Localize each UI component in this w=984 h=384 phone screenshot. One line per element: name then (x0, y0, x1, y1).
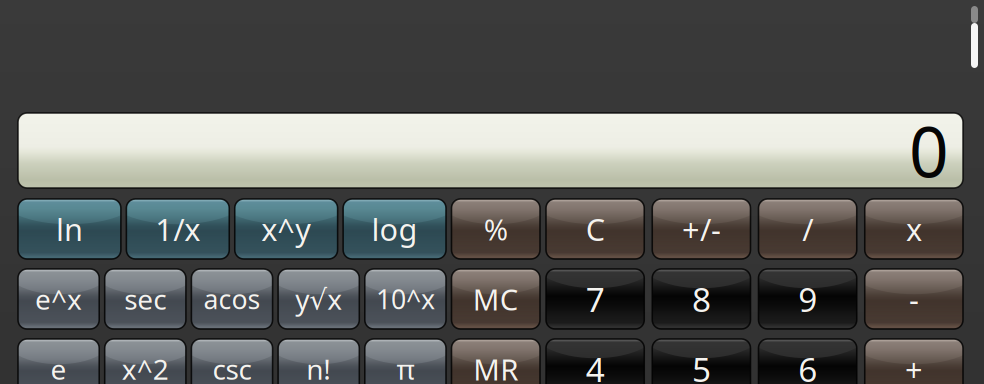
staticText: e^x (35, 280, 82, 318)
staticText: MC (473, 279, 519, 318)
staticText: 8 (692, 277, 711, 321)
staticText: n! (306, 350, 331, 384)
staticText: 1/x (155, 209, 200, 249)
button[interactable]: x^2 (105, 339, 186, 384)
staticText: + (905, 349, 923, 384)
staticText: +/- (682, 209, 721, 249)
button[interactable]: - (865, 269, 963, 329)
staticText: y√x (295, 280, 342, 318)
staticText: x (906, 209, 922, 249)
button[interactable]: n! (278, 339, 359, 384)
button[interactable]: π (365, 339, 446, 384)
staticText: csc (212, 350, 251, 384)
button[interactable]: % (451, 199, 540, 259)
button[interactable]: MC (451, 269, 540, 329)
staticText: 6 (798, 347, 817, 384)
button[interactable]: log (343, 199, 446, 259)
staticText: 10^x (376, 281, 435, 317)
button[interactable]: 1/x (126, 199, 229, 259)
staticText: 0 (909, 104, 949, 197)
button[interactable]: 4 (546, 339, 644, 384)
button[interactable]: 5 (652, 339, 750, 384)
staticText: ln (56, 209, 83, 249)
staticText: sec (124, 280, 166, 318)
button[interactable]: y√x (278, 269, 359, 329)
button[interactable]: 9 (758, 269, 857, 329)
button[interactable]: +/- (652, 199, 750, 259)
button[interactable]: ln (18, 199, 121, 259)
staticText: e (51, 350, 67, 384)
button[interactable]: acos (191, 269, 273, 329)
button[interactable]: 6 (758, 339, 857, 384)
button[interactable]: x^y (235, 199, 338, 259)
staticText: % (484, 209, 508, 248)
staticText: x^y (261, 209, 311, 249)
button[interactable]: + (865, 339, 963, 384)
button[interactable]: 8 (652, 269, 750, 329)
button[interactable]: MR (451, 339, 540, 384)
staticText: 5 (692, 347, 711, 384)
button[interactable]: e^x (18, 269, 99, 329)
button[interactable]: 10^x (365, 269, 446, 329)
button[interactable]: e (18, 339, 99, 384)
button[interactable]: C (546, 199, 644, 259)
staticText: 9 (798, 277, 817, 321)
button[interactable]: sec (105, 269, 186, 329)
staticText: C (586, 209, 605, 249)
staticText: MR (473, 349, 518, 384)
staticText: log (372, 209, 418, 249)
staticText: acos (203, 281, 260, 317)
button[interactable]: csc (191, 339, 273, 384)
button[interactable]: x (865, 199, 963, 259)
staticText: 7 (586, 277, 605, 321)
staticText: - (909, 279, 919, 319)
staticText: 4 (586, 347, 605, 384)
button[interactable]: / (758, 199, 857, 259)
button[interactable]: 7 (546, 269, 644, 329)
staticText: x^2 (122, 350, 169, 384)
staticText: π (396, 350, 414, 384)
staticText: / (802, 209, 813, 249)
